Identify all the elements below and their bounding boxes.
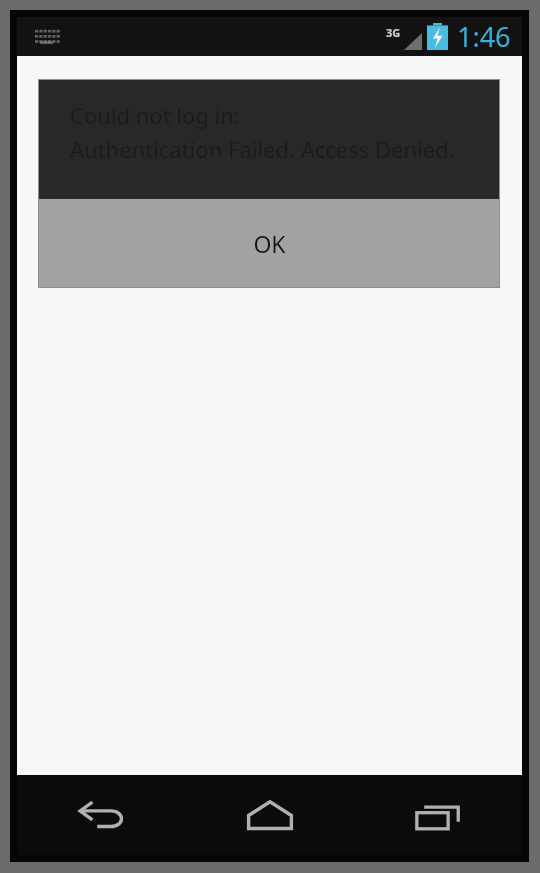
staticText: 1:46 [457,18,511,55]
staticText: 3G [386,25,401,40]
button[interactable]: Home [186,775,354,855]
staticText: OK [253,228,286,259]
button[interactable]: Recent apps [354,775,522,855]
staticText: Could not log in: Authentication Failed.… [70,100,455,165]
button[interactable]: OK [39,199,499,287]
button[interactable]: Back [17,775,186,855]
